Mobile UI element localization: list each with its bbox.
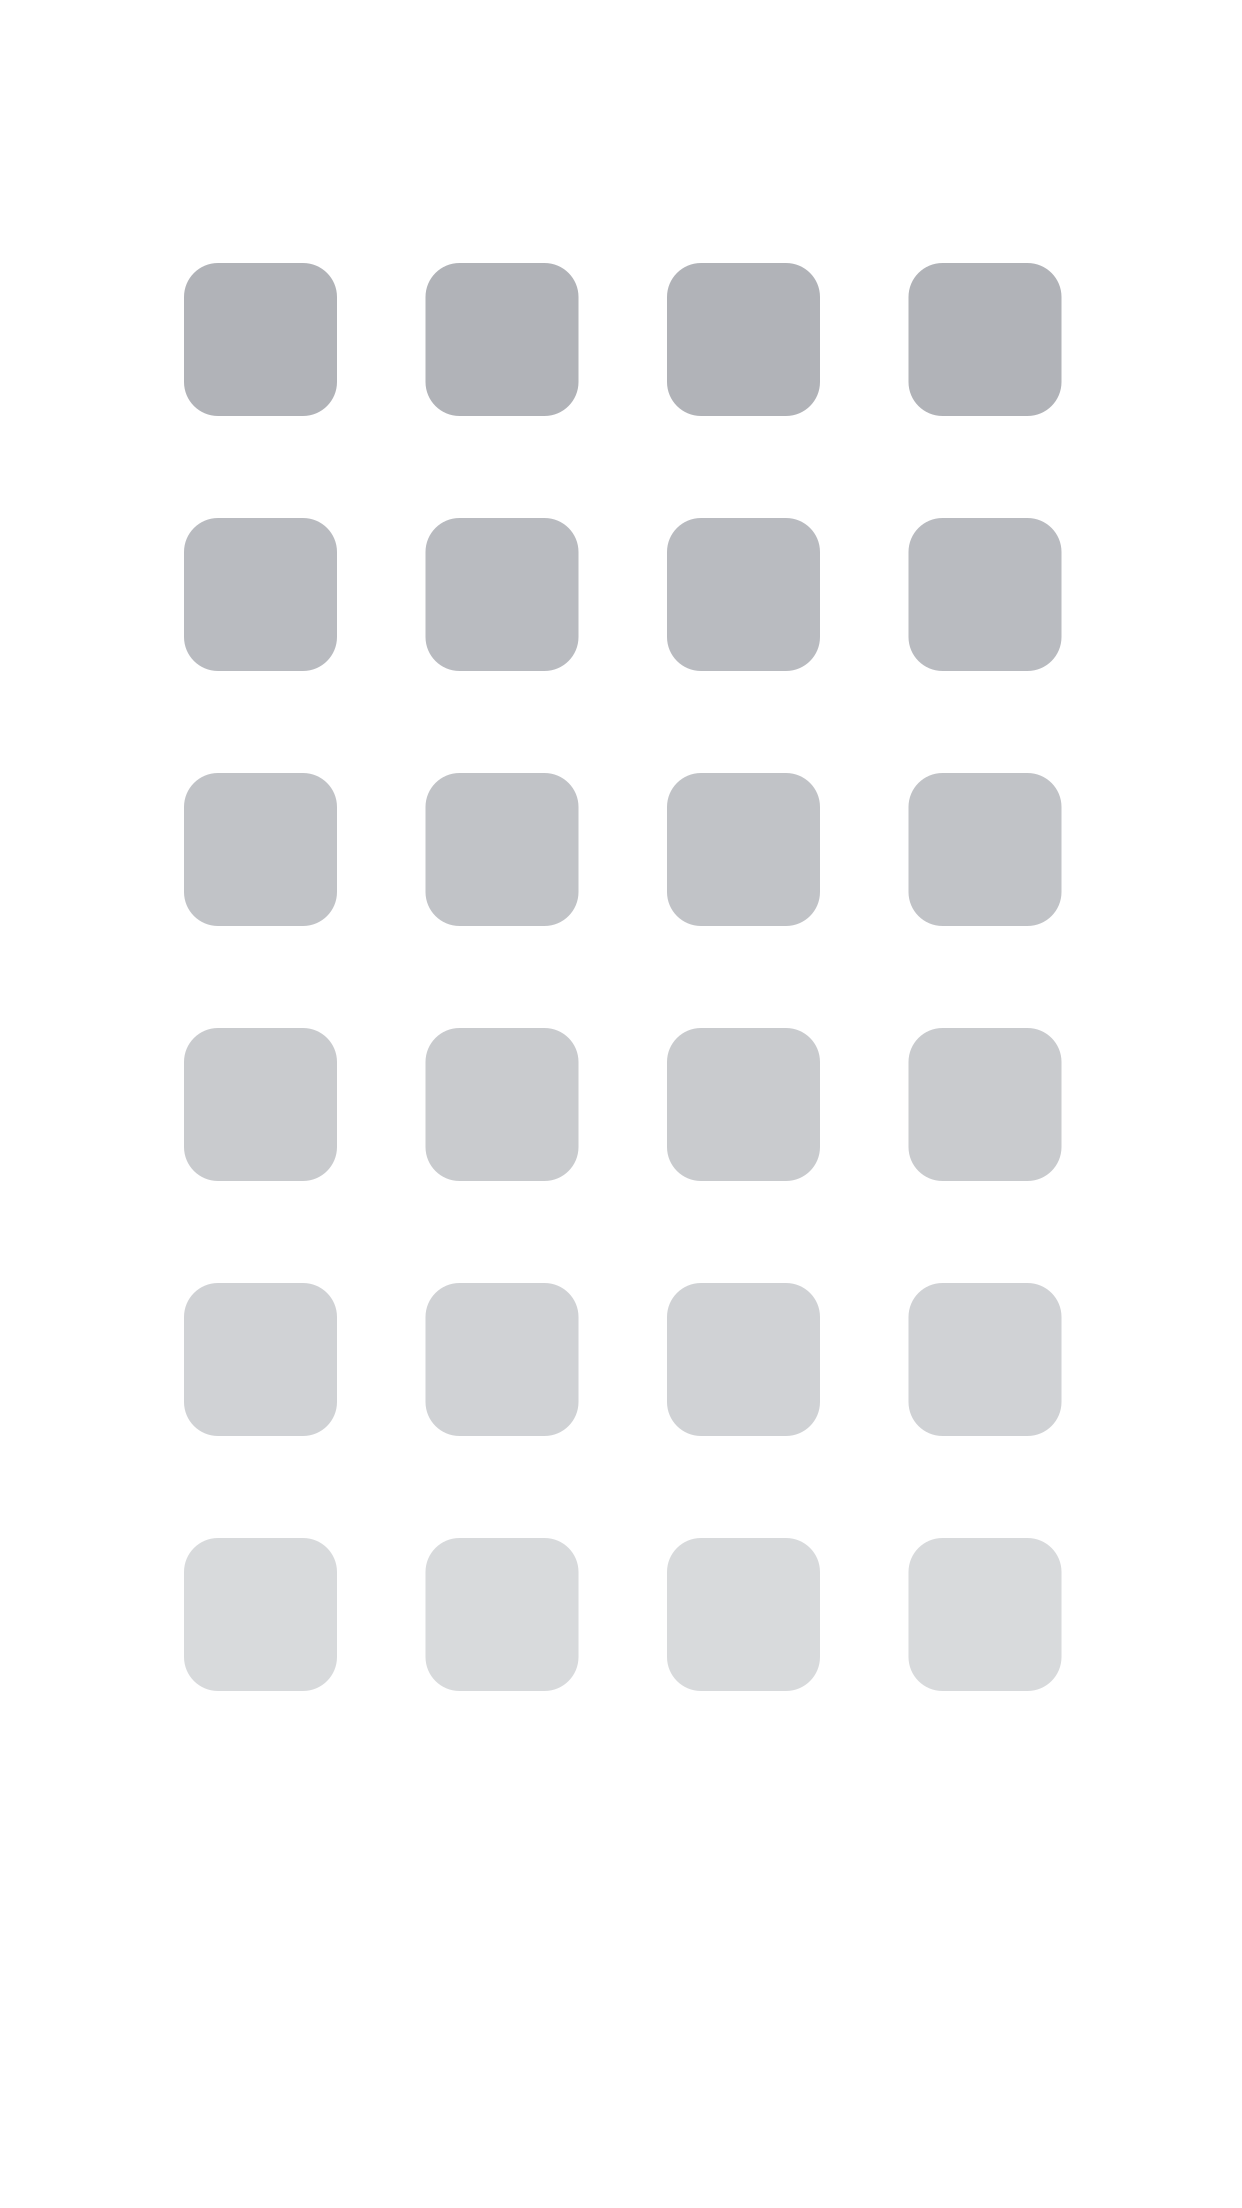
button[interactable]: App 14	[425, 1028, 578, 1181]
button[interactable]: App 4	[908, 263, 1061, 416]
button[interactable]: App 15	[667, 1028, 820, 1181]
button[interactable]: App 3	[667, 263, 820, 416]
button[interactable]: App 6	[425, 518, 578, 671]
button[interactable]: App 16	[908, 1028, 1061, 1181]
button[interactable]: App 12	[908, 773, 1061, 926]
button[interactable]: App 1	[184, 263, 337, 416]
button[interactable]: App 2	[425, 263, 578, 416]
button[interactable]: App 21	[184, 1538, 337, 1691]
button[interactable]: App 9	[184, 773, 337, 926]
button[interactable]: App 13	[184, 1028, 337, 1181]
button[interactable]: App 5	[184, 518, 337, 671]
button[interactable]: App 17	[184, 1283, 337, 1436]
button[interactable]: App 8	[908, 518, 1061, 671]
button[interactable]: App 23	[667, 1538, 820, 1691]
button[interactable]: App 24	[908, 1538, 1061, 1691]
button[interactable]: App 11	[667, 773, 820, 926]
button[interactable]: App 10	[425, 773, 578, 926]
button[interactable]: App 22	[425, 1538, 578, 1691]
button[interactable]: App 18	[425, 1283, 578, 1436]
button[interactable]: App 7	[667, 518, 820, 671]
button[interactable]: App 19	[667, 1283, 820, 1436]
button[interactable]: App 20	[908, 1283, 1061, 1436]
